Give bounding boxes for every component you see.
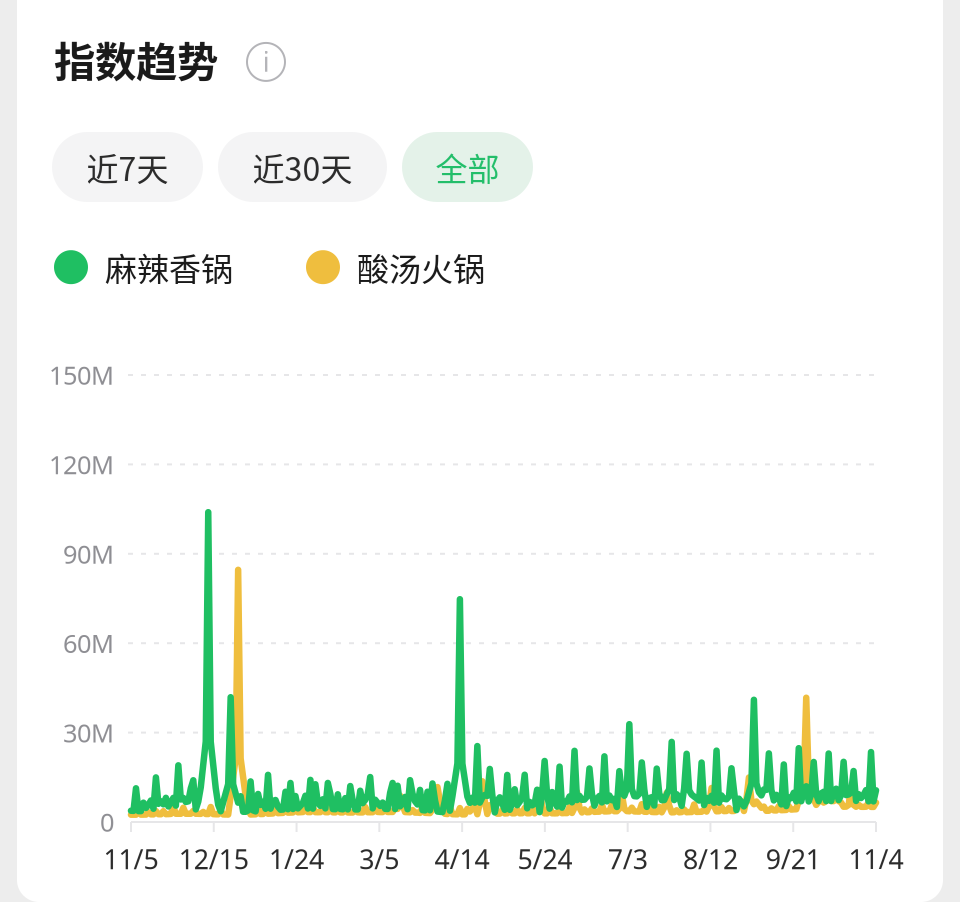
staticText: 11/4 bbox=[848, 841, 903, 877]
staticText: 150M bbox=[49, 358, 114, 392]
staticText: 全部 bbox=[435, 144, 499, 190]
button[interactable]: 近30天 bbox=[218, 132, 387, 202]
staticText: 0 bbox=[100, 805, 114, 839]
staticText: 近30天 bbox=[252, 144, 352, 190]
staticText: 7/3 bbox=[608, 841, 648, 877]
staticText: 8/12 bbox=[683, 841, 738, 877]
button[interactable]: 近7天 bbox=[52, 132, 203, 202]
staticText: 4/14 bbox=[435, 841, 490, 877]
staticText: 11/5 bbox=[103, 841, 158, 877]
staticText: 9/21 bbox=[766, 841, 821, 877]
staticText: 12/15 bbox=[179, 841, 249, 877]
button[interactable]: Info bbox=[245, 38, 287, 80]
button[interactable]: 全部 bbox=[402, 132, 533, 202]
staticText: 3/5 bbox=[359, 841, 399, 877]
staticText: 近7天 bbox=[86, 144, 168, 190]
staticText: 5/24 bbox=[517, 841, 572, 877]
staticText: 120M bbox=[49, 447, 114, 482]
staticText: 酸汤火锅 bbox=[357, 244, 485, 290]
staticText: i bbox=[262, 42, 269, 80]
staticText: 30M bbox=[63, 715, 114, 750]
staticText: 指数趋势 bbox=[54, 29, 218, 89]
staticText: 麻辣香锅 bbox=[105, 244, 233, 290]
staticText: 60M bbox=[63, 626, 114, 660]
staticText: 90M bbox=[63, 536, 114, 571]
staticText: 1/24 bbox=[269, 841, 324, 877]
